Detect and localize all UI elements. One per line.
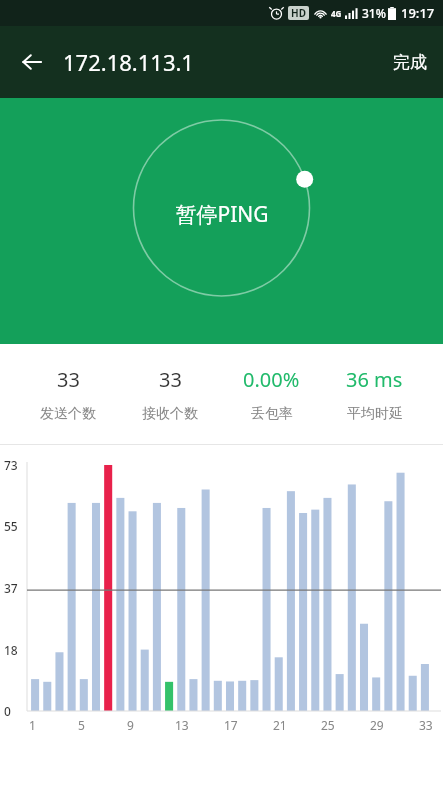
staticText: 1 xyxy=(29,717,36,733)
staticText: 9 xyxy=(127,717,134,733)
staticText: 完成 xyxy=(393,52,427,73)
staticText: 13 xyxy=(175,717,189,733)
staticText: 18 xyxy=(4,642,18,658)
button[interactable]: 暂停PING xyxy=(0,98,443,344)
staticText: 55 xyxy=(4,518,18,534)
button[interactable]: 0.00% xyxy=(237,362,306,427)
staticText: 19:17 xyxy=(401,4,435,22)
staticText: 平均时延 xyxy=(347,405,403,423)
staticText: 172.18.113.1 xyxy=(63,47,194,77)
staticText: 发送个数 xyxy=(40,405,96,423)
staticText: 4G xyxy=(331,8,342,19)
staticText: 5 xyxy=(78,717,85,733)
staticText: 29 xyxy=(370,717,384,733)
staticText: 37 xyxy=(4,580,18,596)
staticText: 73 xyxy=(4,457,18,473)
staticText: HD xyxy=(291,6,306,20)
button[interactable]: Back xyxy=(10,40,54,84)
staticText: 0 xyxy=(4,703,11,719)
button[interactable]: 33 xyxy=(34,362,102,427)
staticText: 17 xyxy=(224,717,238,733)
staticText: 33 xyxy=(159,366,182,393)
staticText: 21 xyxy=(273,717,287,733)
button[interactable]: 33 xyxy=(136,362,204,427)
staticText: 36 ms xyxy=(346,366,403,393)
staticText: 31% xyxy=(362,5,386,21)
staticText: 0.00% xyxy=(243,366,300,393)
staticText: 33 xyxy=(419,717,433,733)
staticText: 接收个数 xyxy=(142,405,198,423)
staticText: 25 xyxy=(321,717,335,733)
staticText: 33 xyxy=(57,366,80,393)
staticText: 丢包率 xyxy=(251,405,293,423)
button[interactable]: 36 ms xyxy=(340,362,409,427)
staticText: 暂停PING xyxy=(175,200,269,229)
button[interactable]: 完成 xyxy=(383,44,437,81)
